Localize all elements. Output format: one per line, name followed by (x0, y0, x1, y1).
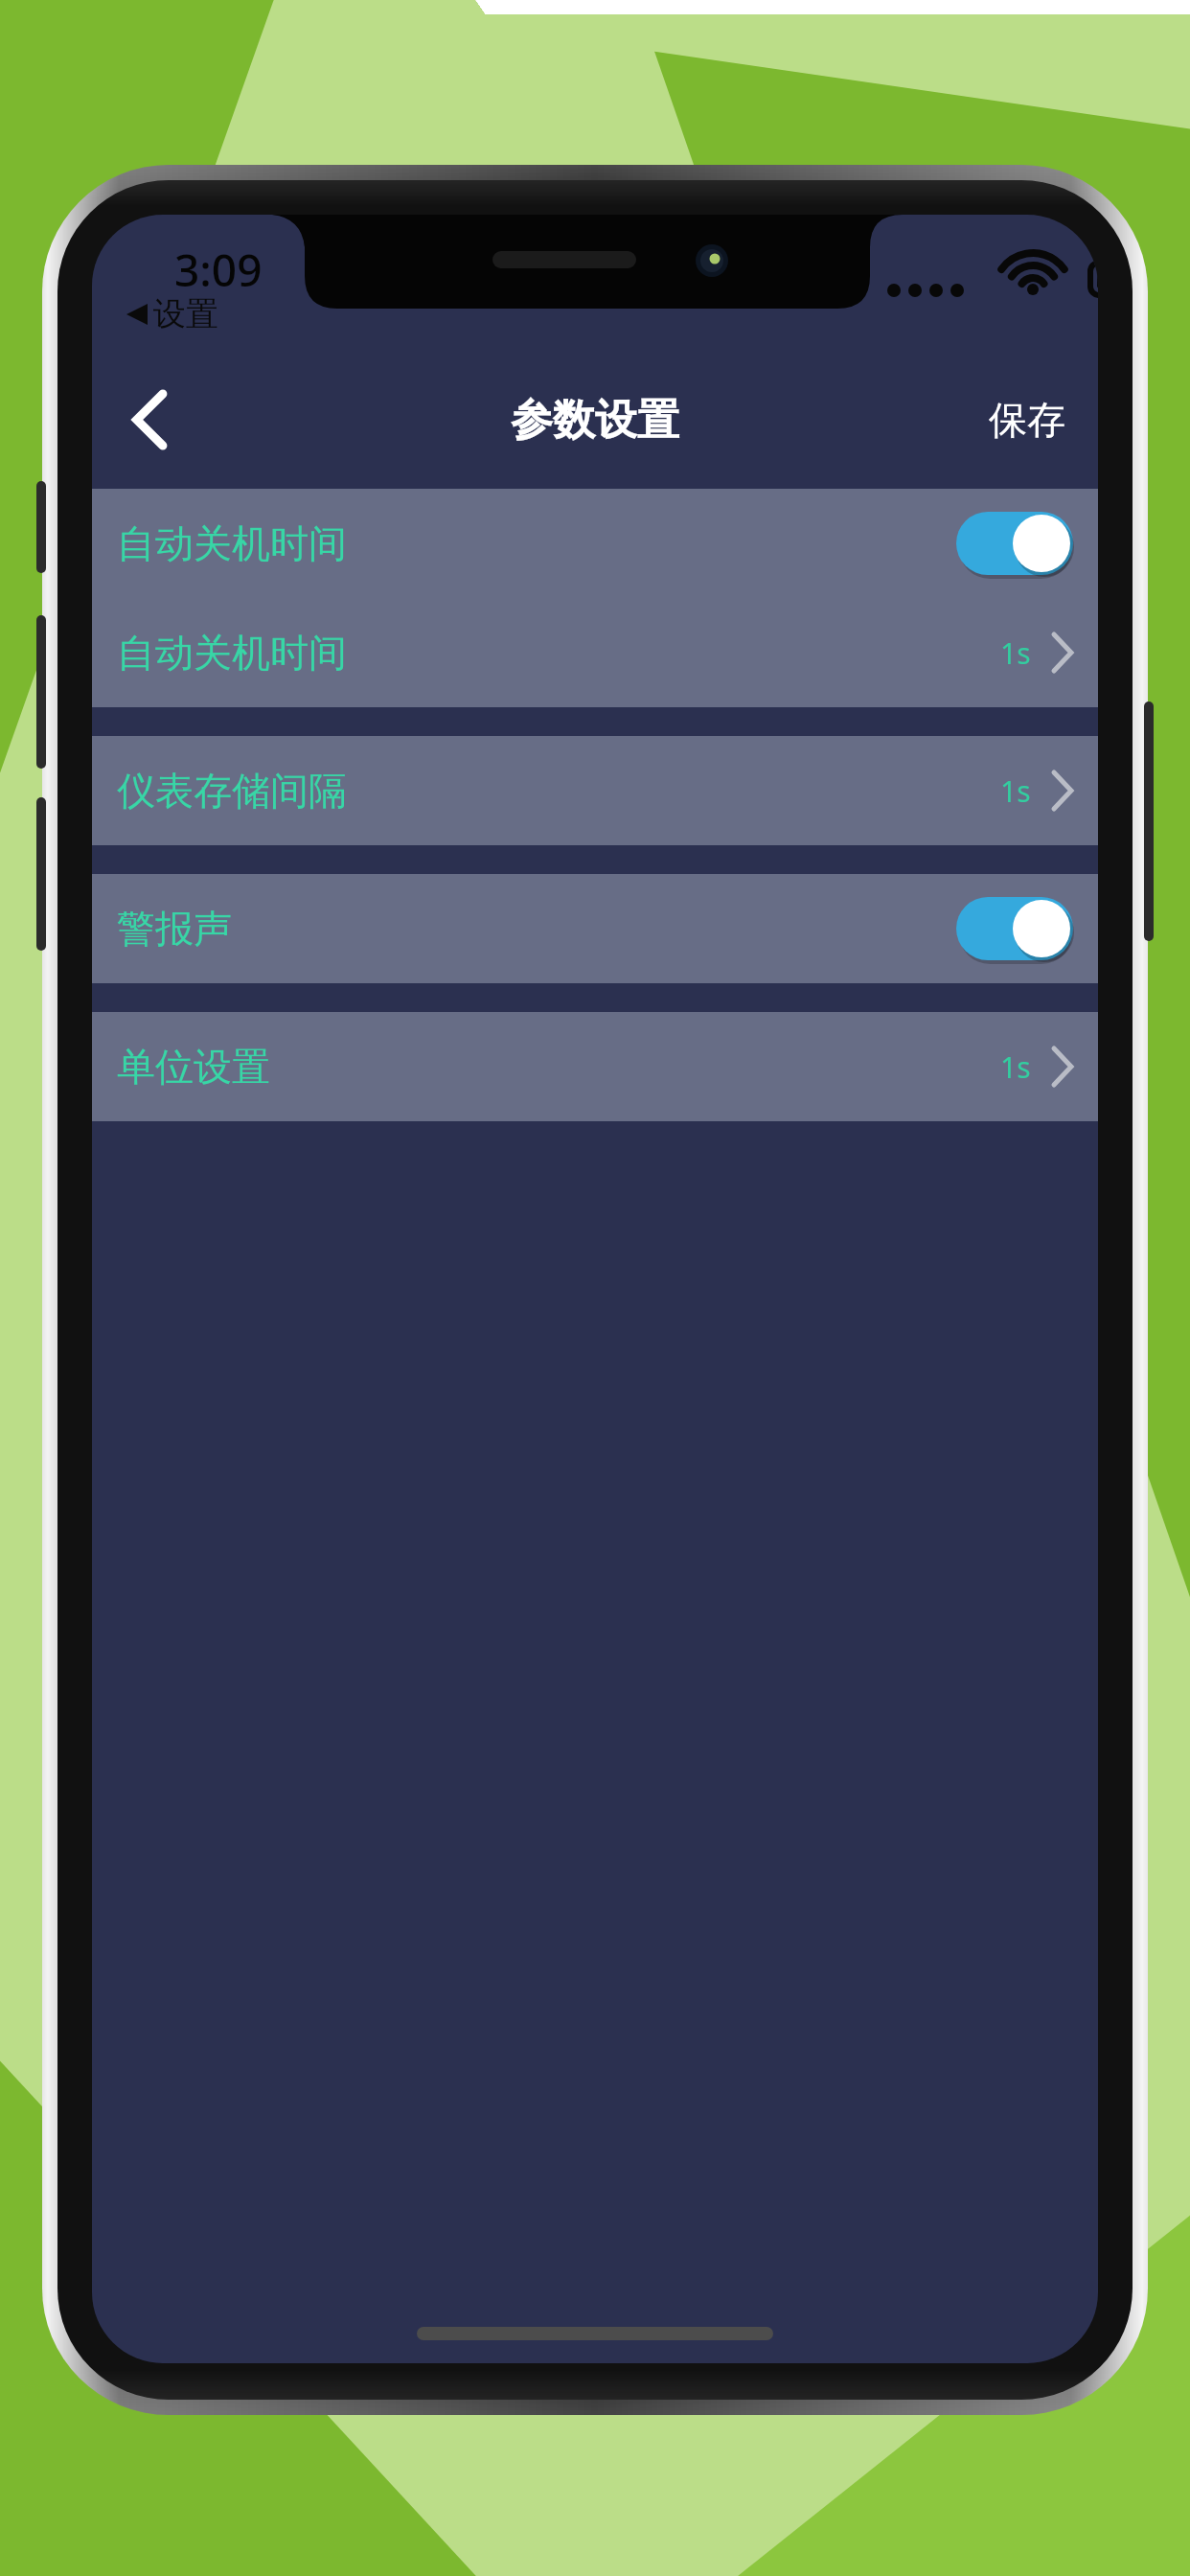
staticText: 保存 (989, 396, 1065, 444)
button[interactable]: 单位设置 (92, 1012, 1098, 1121)
staticText: 仪表存储间隔 (117, 767, 347, 815)
staticText: 1s (1000, 1047, 1031, 1087)
staticText: 警报声 (117, 905, 232, 953)
button[interactable]: 保存 (956, 375, 1098, 465)
staticText: 单位设置 (117, 1043, 270, 1091)
staticText: 3:09 (174, 240, 263, 300)
button[interactable]: Back (109, 379, 192, 461)
button[interactable]: 自动关机时间 (92, 489, 1098, 598)
staticText: 自动关机时间 (117, 519, 347, 567)
button[interactable]: 自动关机时间 (92, 598, 1098, 707)
button[interactable]: 警报声 (92, 874, 1098, 983)
staticText: 1s (1000, 771, 1031, 811)
staticText: 设置 (153, 293, 218, 334)
button[interactable]: Toggle (956, 897, 1073, 960)
staticText: 自动关机时间 (117, 629, 347, 677)
button[interactable]: 仪表存储间隔 (92, 736, 1098, 845)
button[interactable]: Toggle (956, 512, 1073, 575)
staticText: 1s (1000, 633, 1031, 673)
staticText: 参数设置 (511, 394, 679, 447)
